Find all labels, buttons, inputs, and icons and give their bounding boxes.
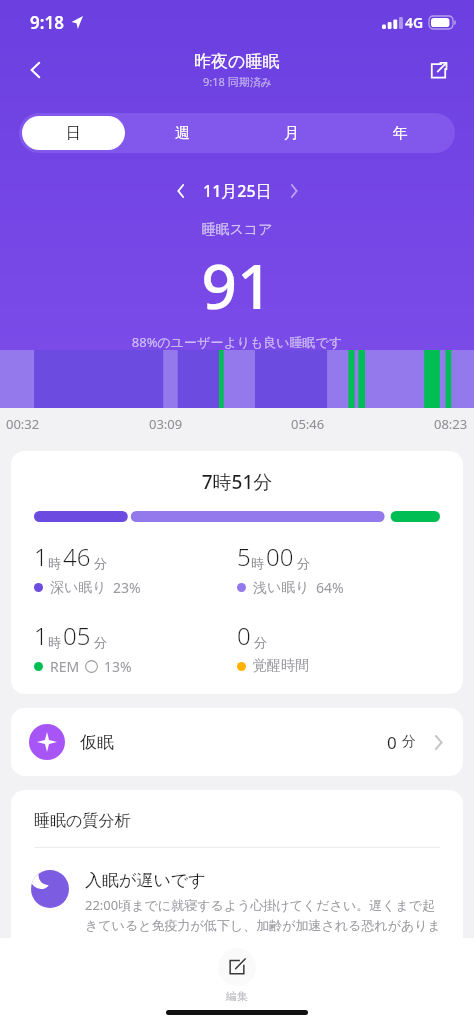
staticText: 22:00頃までに就寝するよう心掛けてください。遅くまで起きていると免疫力が低下… — [85, 896, 445, 954]
button[interactable]: 共有 — [416, 48, 460, 92]
button[interactable]: 年 — [349, 116, 452, 150]
staticText: 5 — [237, 540, 251, 573]
staticText: 浅い眠り — [253, 579, 310, 597]
button[interactable]: 仮眠 — [11, 708, 463, 776]
staticText: 00 — [266, 540, 294, 573]
staticText: 日 — [66, 124, 81, 143]
staticText: 11月25日 — [203, 180, 272, 202]
staticText: 仮眠 — [80, 732, 114, 753]
staticText: 年 — [393, 124, 408, 143]
staticText: 編集 — [226, 989, 248, 1003]
staticText: 睡眠の質分析 — [34, 811, 131, 831]
staticText: 深い眠り — [50, 579, 107, 597]
staticText: 分 — [94, 634, 107, 650]
staticText: 05:46 — [291, 415, 325, 433]
button[interactable]: 7時51分 — [11, 451, 463, 694]
button[interactable]: 週 — [131, 116, 234, 150]
staticText: 時 — [251, 555, 264, 571]
button[interactable]: 編集 — [206, 946, 268, 1005]
staticText: 23% — [113, 578, 141, 597]
staticText: 1 — [34, 540, 48, 573]
staticText: 時 — [48, 634, 61, 650]
staticText: 91 — [0, 243, 474, 327]
staticText: 0 — [237, 619, 251, 652]
staticText: 0 — [387, 731, 397, 754]
staticText: 入眠が遅いです — [85, 870, 206, 891]
staticText: 分 — [297, 555, 310, 571]
button[interactable]: 戻る — [14, 48, 58, 92]
staticText: REM — [50, 657, 80, 676]
staticText: 88%のユーザーよりも良い睡眠です — [0, 333, 474, 350]
staticText: 週 — [175, 124, 190, 143]
staticText: 00:32 — [6, 415, 40, 433]
button[interactable]: 日 — [22, 116, 125, 150]
button[interactable]: 次の日 — [278, 175, 310, 207]
staticText: 分 — [402, 733, 416, 751]
staticText: 13% — [104, 657, 132, 676]
staticText: 1 — [34, 619, 48, 652]
staticText: 分 — [254, 634, 267, 650]
staticText: 46 — [63, 540, 91, 573]
staticText: 時 — [48, 555, 61, 571]
button[interactable]: 睡眠の質分析 — [11, 790, 463, 976]
staticText: 4G — [405, 13, 424, 32]
staticText: 9:18 — [30, 11, 64, 34]
staticText: 08:23 — [434, 415, 468, 433]
staticText: 9:18 同期済み — [203, 74, 272, 89]
staticText: 昨夜の睡眠 — [194, 51, 280, 72]
staticText: 03:09 — [149, 415, 183, 433]
staticText: 睡眠スコア — [0, 221, 474, 239]
staticText: 覚醒時間 — [253, 657, 309, 675]
staticText: 月 — [284, 124, 299, 143]
staticText: 分 — [94, 555, 107, 571]
staticText: 64% — [316, 578, 344, 597]
button[interactable]: 月 — [240, 116, 343, 150]
button[interactable]: 前の日 — [165, 175, 197, 207]
staticText: 7時51分 — [34, 469, 440, 495]
staticText: 05 — [63, 619, 91, 652]
